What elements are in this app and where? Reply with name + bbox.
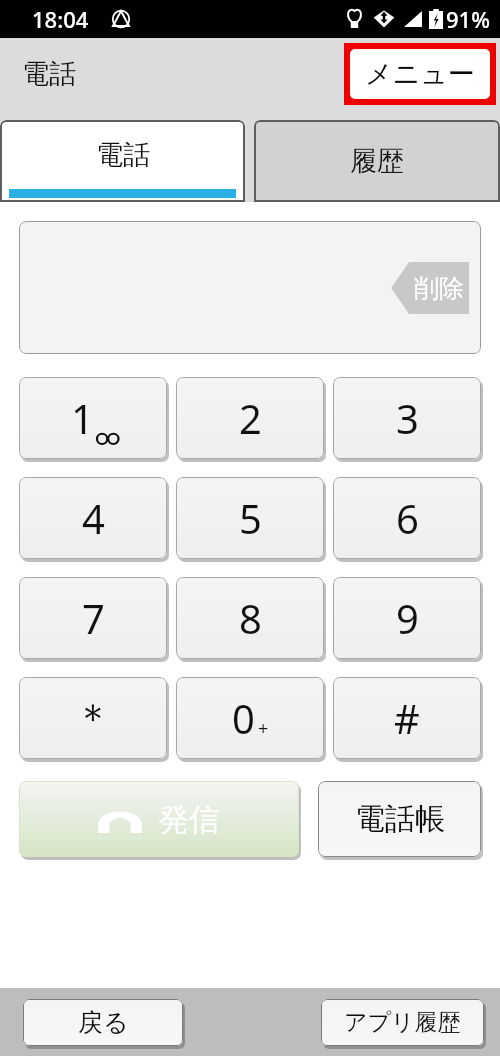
button[interactable]: ＊ bbox=[19, 677, 167, 759]
staticText: 戻る bbox=[78, 1007, 129, 1038]
button[interactable]: 発信 bbox=[19, 781, 299, 857]
staticText: 電話 bbox=[22, 57, 76, 91]
button[interactable]: 9 bbox=[333, 577, 481, 659]
staticText: + bbox=[258, 716, 269, 741]
staticText: 0 bbox=[232, 691, 255, 745]
button[interactable]: 4 bbox=[19, 477, 167, 559]
staticText: アプリ履歴 bbox=[344, 1008, 461, 1037]
staticText: # bbox=[394, 691, 420, 745]
staticText: 削除 bbox=[414, 273, 464, 304]
button[interactable]: 6 bbox=[333, 477, 481, 559]
button[interactable]: メニュー bbox=[350, 49, 490, 99]
button[interactable]: 1 bbox=[19, 377, 167, 459]
button[interactable]: 0 bbox=[176, 677, 324, 759]
button[interactable]: 電話 bbox=[0, 120, 245, 202]
button[interactable]: 3 bbox=[333, 377, 481, 459]
staticText: 発信 bbox=[158, 800, 220, 839]
staticText: 6 bbox=[396, 491, 419, 545]
button[interactable]: 電話帳 bbox=[318, 781, 481, 857]
button[interactable]: # bbox=[333, 677, 481, 759]
staticText: 履歴 bbox=[350, 144, 404, 178]
button[interactable]: 7 bbox=[19, 577, 167, 659]
staticText: 1 bbox=[71, 391, 94, 445]
staticText: 8 bbox=[239, 591, 262, 645]
staticText: 2 bbox=[239, 391, 262, 445]
staticText: 9 bbox=[396, 591, 419, 645]
staticText: 3 bbox=[396, 391, 419, 445]
button[interactable]: 戻る bbox=[23, 999, 183, 1046]
staticText: 7 bbox=[82, 591, 105, 645]
button[interactable]: 5 bbox=[176, 477, 324, 559]
staticText: 電話帳 bbox=[355, 800, 445, 838]
staticText: 電話 bbox=[96, 138, 150, 172]
button[interactable]: 履歴 bbox=[254, 120, 500, 202]
button[interactable]: 8 bbox=[176, 577, 324, 659]
staticText: ＊ bbox=[73, 693, 113, 743]
button[interactable]: 2 bbox=[176, 377, 324, 459]
staticText: 91% bbox=[446, 4, 490, 34]
staticText: 5 bbox=[239, 491, 262, 545]
button[interactable]: 削除 bbox=[391, 262, 473, 314]
button[interactable]: アプリ履歴 bbox=[321, 999, 484, 1046]
staticText: 18:04 bbox=[32, 4, 89, 34]
staticText: メニュー bbox=[365, 57, 475, 91]
staticText: 4 bbox=[82, 491, 105, 545]
